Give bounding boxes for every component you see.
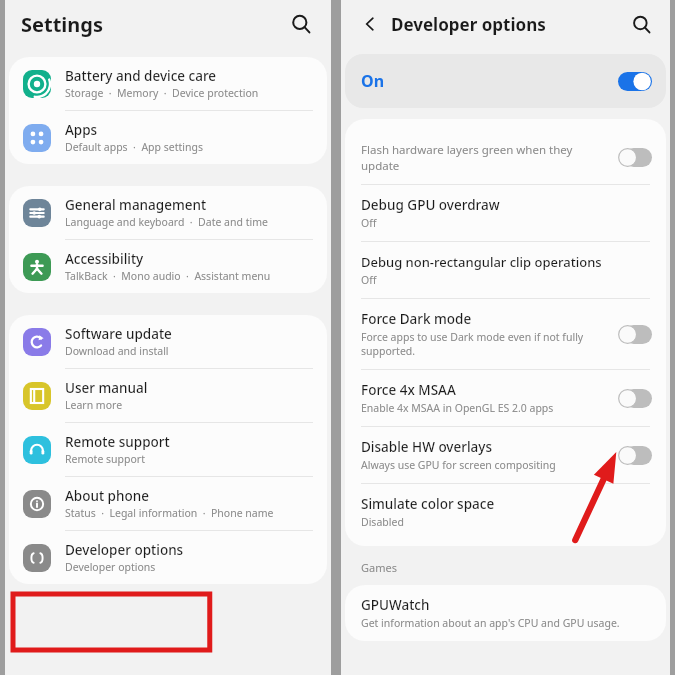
button[interactable]: Search [626, 9, 656, 39]
staticText: Enable 4x MSAA in OpenGL ES 2.0 apps [361, 401, 554, 415]
staticText: Default apps · App settings [65, 140, 203, 154]
staticText: Get information about an app's CPU and G… [361, 616, 620, 630]
staticText: On [361, 70, 385, 92]
button[interactable]: Debug GPU overdraw [345, 185, 666, 242]
staticText: Off [361, 273, 377, 287]
staticText: Flash hardware layers green when they up… [361, 142, 608, 173]
staticText: Debug non-rectangular clip operations [361, 253, 602, 271]
staticText: Games [361, 560, 397, 575]
staticText: General management [65, 196, 207, 214]
staticText: Software update [65, 325, 172, 343]
staticText: Remote support [65, 452, 145, 466]
button[interactable]: About phone [9, 477, 327, 531]
button[interactable]: Back [355, 9, 385, 39]
staticText: Developer options [65, 560, 156, 574]
staticText: Disable HW overlays [361, 438, 492, 456]
button[interactable]: Battery and device care [9, 57, 327, 111]
staticText: Storage · Memory · Device protection [65, 86, 259, 100]
staticText: Settings [21, 11, 103, 38]
staticText: Debug GPU overdraw [361, 196, 500, 214]
button[interactable]: Simulate color space [345, 484, 666, 540]
staticText: Force Dark mode [361, 310, 472, 328]
staticText: Force apps to use Dark mode even if not … [361, 330, 608, 358]
staticText: Download and install [65, 344, 169, 358]
button[interactable]: Force Dark mode [618, 325, 652, 344]
staticText: Simulate color space [361, 495, 495, 513]
staticText: Learn more [65, 398, 123, 412]
button[interactable]: Disable HW overlays [618, 446, 652, 465]
staticText: Developer options [391, 13, 546, 36]
button[interactable]: Apps [9, 111, 327, 164]
button[interactable]: Disable HW overlays [345, 427, 666, 484]
button[interactable]: Search [285, 8, 317, 40]
button[interactable]: Developer options [9, 531, 327, 584]
button[interactable]: Force 4x MSAA [345, 370, 666, 427]
staticText: Status · Legal information · Phone name [65, 506, 274, 520]
button[interactable]: Force 4x MSAA [618, 389, 652, 408]
staticText: Battery and device care [65, 67, 217, 85]
staticText: User manual [65, 379, 148, 397]
staticText: TalkBack · Mono audio · Assistant menu [65, 269, 271, 283]
button[interactable]: Force Dark mode [345, 299, 666, 370]
staticText: Developer options [65, 541, 184, 559]
button[interactable]: User manual [9, 369, 327, 423]
staticText: Always use GPU for screen compositing [361, 458, 556, 472]
staticText: Off [361, 216, 377, 230]
button[interactable]: Flash hardware layers green when they up… [618, 148, 652, 167]
button[interactable]: Software update [9, 315, 327, 369]
staticText: GPUWatch [361, 596, 430, 614]
staticText: Language and keyboard · Date and time [65, 215, 268, 229]
button[interactable]: Remote support [9, 423, 327, 477]
staticText: Force 4x MSAA [361, 381, 456, 399]
staticText: About phone [65, 487, 149, 505]
button[interactable]: Accessibility [9, 240, 327, 293]
staticText: Remote support [65, 433, 170, 451]
staticText: Apps [65, 121, 98, 139]
staticText: Disabled [361, 515, 404, 529]
button[interactable]: General management [9, 186, 327, 240]
button[interactable]: On [345, 54, 666, 108]
button[interactable]: Flash hardware layers green when they up… [345, 131, 666, 185]
button[interactable]: Debug non-rectangular clip operations [345, 242, 666, 299]
staticText: Accessibility [65, 250, 144, 268]
button[interactable]: GPUWatch [345, 585, 666, 641]
